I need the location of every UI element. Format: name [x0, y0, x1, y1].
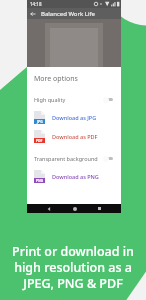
staticText: 14:18: [30, 1, 42, 7]
button[interactable]: PNG: [27, 168, 121, 184]
staticText: Transparent background: [34, 155, 98, 162]
button[interactable]: Transparent background: [27, 152, 121, 164]
button[interactable]: PDF: [27, 128, 121, 144]
button[interactable]: Back: [44, 204, 53, 213]
staticText: Download as JPG: [52, 114, 97, 121]
button[interactable]: JPG: [27, 109, 121, 125]
staticText: Download as PNG: [52, 173, 99, 180]
button[interactable]: Home: [70, 204, 79, 213]
button[interactable]: High quality: [27, 93, 121, 105]
staticText: PDF: [36, 138, 43, 143]
button[interactable]: Back: [27, 8, 38, 19]
staticText: Balanced Work Life: [41, 10, 95, 18]
staticText: JPG: [37, 119, 43, 124]
staticText: PNG: [36, 178, 44, 183]
staticText: Download as PDF: [52, 133, 98, 140]
button[interactable]: Recents: [95, 204, 104, 213]
staticText: High quality: [34, 96, 66, 103]
staticText: Print or download in high resolution as …: [0, 243, 146, 292]
staticText: More options: [34, 74, 78, 84]
